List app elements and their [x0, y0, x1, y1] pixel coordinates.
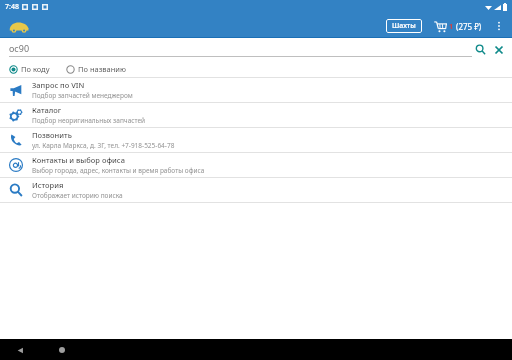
staticText: Подбор запчастей менеджером [32, 91, 133, 100]
staticText: 7:48 [5, 2, 19, 12]
staticText: История [32, 180, 64, 190]
button[interactable]: Запрос по VIN [0, 78, 512, 103]
button[interactable]: По названию [65, 63, 127, 75]
button[interactable]: Back [12, 342, 28, 358]
staticText: По названию [78, 64, 126, 74]
staticText: Позвонить [32, 130, 72, 140]
staticText: ул. Карла Маркса, д. 3Г, тел. +7-918-525… [32, 141, 175, 150]
button[interactable]: Clear [492, 43, 505, 56]
staticText: (275 ₽) [456, 21, 482, 32]
staticText: Запрос по VIN [32, 80, 85, 90]
staticText: ос90 [9, 42, 30, 54]
staticText: Контакты и выбор офиса [32, 155, 125, 165]
button[interactable]: Cart [432, 18, 484, 35]
button[interactable]: More options [490, 17, 508, 35]
staticText: Каталог [32, 105, 62, 115]
button[interactable]: Home [54, 342, 70, 358]
staticText: По коду [21, 64, 50, 74]
button[interactable]: Позвонить [0, 128, 512, 153]
staticText: Выбор города, адрес, контакты и время ра… [32, 166, 205, 175]
staticText: Подбор неоригинальных запчастей [32, 116, 146, 125]
button[interactable]: Контакты и выбор офиса [0, 153, 512, 178]
staticText: Отображает историю поиска [32, 191, 123, 200]
staticText: 1 [449, 22, 454, 32]
button[interactable]: Logo [8, 15, 30, 37]
button[interactable]: Search [474, 43, 487, 56]
staticText: Шахты [392, 21, 416, 31]
button[interactable]: По коду [8, 63, 51, 75]
button[interactable]: История [0, 178, 512, 203]
button[interactable]: Каталог [0, 103, 512, 128]
button[interactable]: Шахты [386, 19, 422, 33]
